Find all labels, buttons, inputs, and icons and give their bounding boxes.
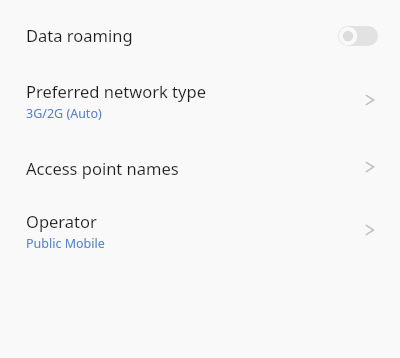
button[interactable]: Preferred network type (0, 62, 400, 134)
staticText: Preferred network type (26, 80, 206, 102)
button[interactable]: Data roaming (0, 0, 400, 62)
other: Data roaming toggle, off (338, 26, 378, 46)
staticText: Operator (26, 210, 97, 232)
button[interactable]: Access point names (0, 134, 400, 187)
staticText: Data roaming (26, 24, 133, 46)
staticText: 3G/2G (Auto) (26, 105, 102, 122)
button[interactable]: Operator (0, 187, 400, 257)
staticText: Access point names (26, 157, 179, 179)
staticText: Public Mobile (26, 235, 105, 252)
